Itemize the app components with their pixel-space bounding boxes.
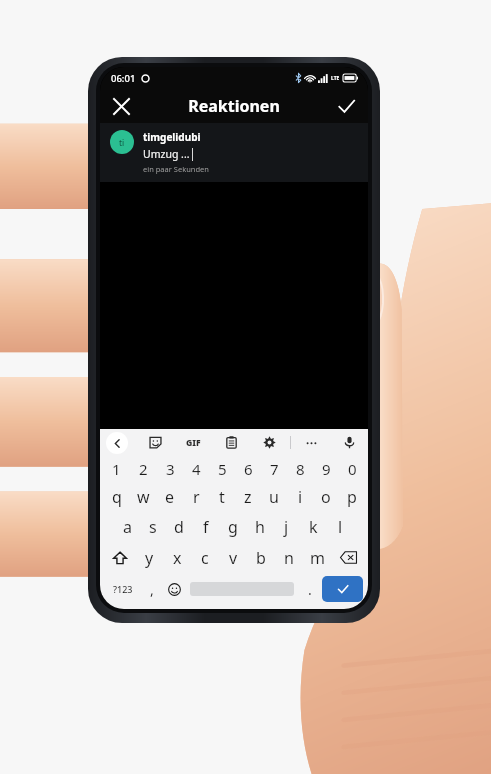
button[interactable]: o	[313, 482, 339, 512]
button[interactable]: a	[114, 512, 140, 542]
staticText: ein paar Sekunden	[143, 164, 209, 174]
staticText: t	[219, 486, 225, 508]
staticText: y	[145, 547, 154, 569]
staticText: w	[137, 486, 150, 508]
button[interactable]: f	[192, 512, 219, 542]
button[interactable]: k	[300, 512, 327, 542]
button[interactable]: h	[246, 512, 273, 542]
button[interactable]: b	[247, 542, 275, 573]
button[interactable]: 0	[339, 456, 365, 482]
button[interactable]: d	[166, 512, 192, 542]
staticText: 4	[192, 459, 201, 479]
staticText: o	[321, 486, 331, 508]
staticText: f	[203, 516, 209, 538]
staticText: 9	[322, 459, 331, 479]
staticText: 5	[218, 459, 227, 479]
button[interactable]: s	[140, 512, 166, 542]
staticText: 7	[270, 459, 279, 479]
button[interactable]: i	[287, 482, 313, 512]
staticText: 1	[112, 459, 121, 479]
button[interactable]: Mehr	[301, 432, 322, 453]
button[interactable]: y	[136, 542, 163, 573]
button[interactable]: Emoji	[162, 573, 186, 605]
staticText: 2	[139, 459, 148, 479]
button[interactable]: .	[298, 573, 322, 605]
button[interactable]: Mikrofon	[339, 432, 360, 453]
staticText: g	[228, 516, 238, 538]
staticText: GIF	[186, 437, 201, 449]
button[interactable]: n	[275, 542, 303, 573]
staticText: timgelidubi	[143, 130, 201, 144]
staticText: 06:01	[111, 72, 136, 85]
staticText: .	[308, 580, 312, 599]
button[interactable]: Bestätigen	[329, 89, 363, 123]
button[interactable]: 1	[103, 456, 130, 482]
staticText: s	[149, 516, 157, 538]
button[interactable]: Schließen	[104, 89, 138, 123]
staticText: u	[269, 486, 279, 508]
button[interactable]: ti	[100, 123, 368, 182]
staticText: Reaktionen	[188, 95, 280, 117]
button[interactable]: GIF	[183, 435, 204, 451]
staticText: LTE	[331, 75, 340, 82]
button[interactable]: x	[163, 542, 191, 573]
button[interactable]: r	[183, 482, 209, 512]
button[interactable]: m	[303, 542, 331, 573]
staticText: d	[174, 516, 184, 538]
button[interactable]: q	[103, 482, 130, 512]
staticText: c	[201, 547, 209, 569]
staticText: 8	[296, 459, 305, 479]
staticText: Umzug ...	[143, 147, 190, 161]
button[interactable]: 7	[261, 456, 287, 482]
staticText: n	[284, 547, 294, 569]
button[interactable]: 5	[209, 456, 235, 482]
staticText: h	[255, 516, 265, 538]
staticText: k	[309, 516, 318, 538]
staticText: 6	[244, 459, 253, 479]
staticText: l	[338, 516, 343, 538]
button[interactable]: e	[157, 482, 183, 512]
button[interactable]: g	[219, 512, 246, 542]
staticText: i	[298, 486, 303, 508]
button[interactable]: 2	[130, 456, 157, 482]
staticText: ,	[150, 580, 154, 599]
staticText: p	[347, 486, 357, 508]
button[interactable]: p	[339, 482, 365, 512]
staticText: ?123	[113, 583, 133, 595]
button[interactable]: 3	[157, 456, 183, 482]
staticText: j	[284, 516, 289, 538]
button[interactable]: 9	[313, 456, 339, 482]
button[interactable]: t	[209, 482, 235, 512]
staticText: 3	[166, 459, 175, 479]
button[interactable]: Zwischenablage	[221, 432, 242, 453]
button[interactable]: l	[327, 512, 354, 542]
button[interactable]: Zurück	[106, 432, 128, 454]
staticText: a	[123, 516, 132, 538]
staticText: m	[310, 547, 325, 569]
button[interactable]: ?123	[105, 573, 141, 605]
staticText: x	[173, 547, 182, 569]
button[interactable]: ,	[141, 573, 162, 605]
button[interactable]: Senden	[322, 576, 363, 602]
staticText: ti	[119, 137, 125, 148]
button[interactable]: 8	[287, 456, 313, 482]
staticText: q	[112, 486, 122, 508]
button[interactable]: Sticker	[145, 432, 166, 453]
button[interactable]: Einstellungen	[259, 432, 280, 453]
button[interactable]: 6	[235, 456, 261, 482]
staticText: e	[165, 486, 175, 508]
button[interactable]: u	[261, 482, 287, 512]
staticText: r	[193, 486, 200, 508]
button[interactable]: 4	[183, 456, 209, 482]
button[interactable]: c	[191, 542, 219, 573]
staticText: b	[256, 547, 266, 569]
button[interactable]: j	[273, 512, 300, 542]
button[interactable]: v	[219, 542, 247, 573]
staticText: 0	[348, 459, 357, 479]
button[interactable]: Umschalt	[103, 542, 136, 573]
button[interactable]: Löschen	[331, 542, 365, 573]
staticText: v	[229, 547, 238, 569]
button[interactable]: w	[130, 482, 157, 512]
button[interactable]: z	[235, 482, 261, 512]
